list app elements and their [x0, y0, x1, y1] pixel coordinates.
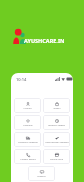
staticText: Contact Details — [20, 158, 36, 161]
button[interactable]: Recently Viewed — [43, 115, 70, 130]
button[interactable]: Online Store — [43, 149, 70, 164]
staticText: Favorites — [23, 124, 33, 127]
button[interactable]: Support — [28, 166, 55, 181]
staticText: Orders — [53, 107, 61, 110]
staticText: 10:14 — [16, 77, 27, 82]
staticText: AYUSHCARE.IN — [24, 37, 65, 44]
staticText: Account — [23, 107, 32, 110]
staticText: Support — [37, 175, 46, 178]
button[interactable]: International Shipping — [43, 132, 70, 147]
button[interactable]: Contact Details — [14, 149, 41, 164]
staticText: Recently Viewed — [48, 124, 65, 127]
button[interactable]: Orders — [43, 98, 70, 113]
staticText: Online Store — [50, 158, 63, 161]
button[interactable]: Account — [14, 98, 41, 113]
button[interactable]: Favorites — [14, 115, 41, 130]
button[interactable]: Domestic Shipping — [14, 132, 41, 147]
button[interactable]: AYUSHCARE.IN — [13, 28, 54, 44]
staticText: International Shipping — [45, 141, 69, 144]
staticText: Domestic Shipping — [18, 141, 38, 144]
